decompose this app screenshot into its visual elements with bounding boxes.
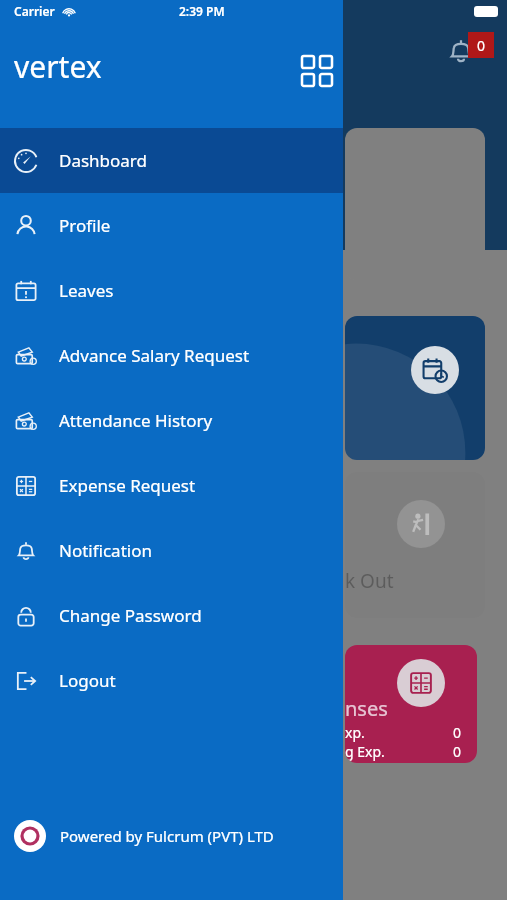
- button[interactable]: Expense Request: [0, 453, 343, 518]
- staticText: vertex: [14, 46, 102, 87]
- button[interactable]: Leaves: [0, 258, 343, 323]
- staticText: Expense Request: [59, 474, 196, 497]
- staticText: g Exp.: [345, 742, 385, 761]
- staticText: xp.: [345, 723, 365, 742]
- staticText: Notification: [59, 539, 152, 562]
- staticText: Advance Salary Request: [59, 344, 250, 367]
- staticText: Carrier: [14, 3, 55, 19]
- button[interactable]: Dashboard: [0, 128, 343, 193]
- button[interactable]: Profile: [0, 193, 343, 258]
- staticText: k Out: [345, 568, 394, 594]
- staticText: Change Password: [59, 604, 202, 627]
- staticText: Logout: [59, 669, 116, 692]
- button[interactable]: Attendance History: [0, 388, 343, 453]
- button[interactable]: Apps grid: [298, 52, 336, 90]
- staticText: Profile: [59, 214, 111, 237]
- staticText: Powered by Fulcrum (PVT) LTD: [60, 826, 274, 846]
- staticText: 0: [453, 742, 462, 761]
- staticText: nses: [345, 695, 388, 722]
- staticText: Dashboard: [59, 149, 148, 172]
- button[interactable]: Change Password: [0, 583, 343, 648]
- staticText: Attendance History: [59, 409, 213, 432]
- staticText: 0: [453, 723, 462, 742]
- staticText: Leaves: [59, 279, 114, 302]
- staticText: 2:39 PM: [179, 3, 225, 19]
- button[interactable]: Advance Salary Request: [0, 323, 343, 388]
- staticText: 0: [477, 36, 486, 55]
- button[interactable]: Notification: [0, 518, 343, 583]
- button[interactable]: Logout: [0, 648, 343, 713]
- button[interactable]: Powered by Fulcrum (PVT) LTD: [14, 820, 343, 852]
